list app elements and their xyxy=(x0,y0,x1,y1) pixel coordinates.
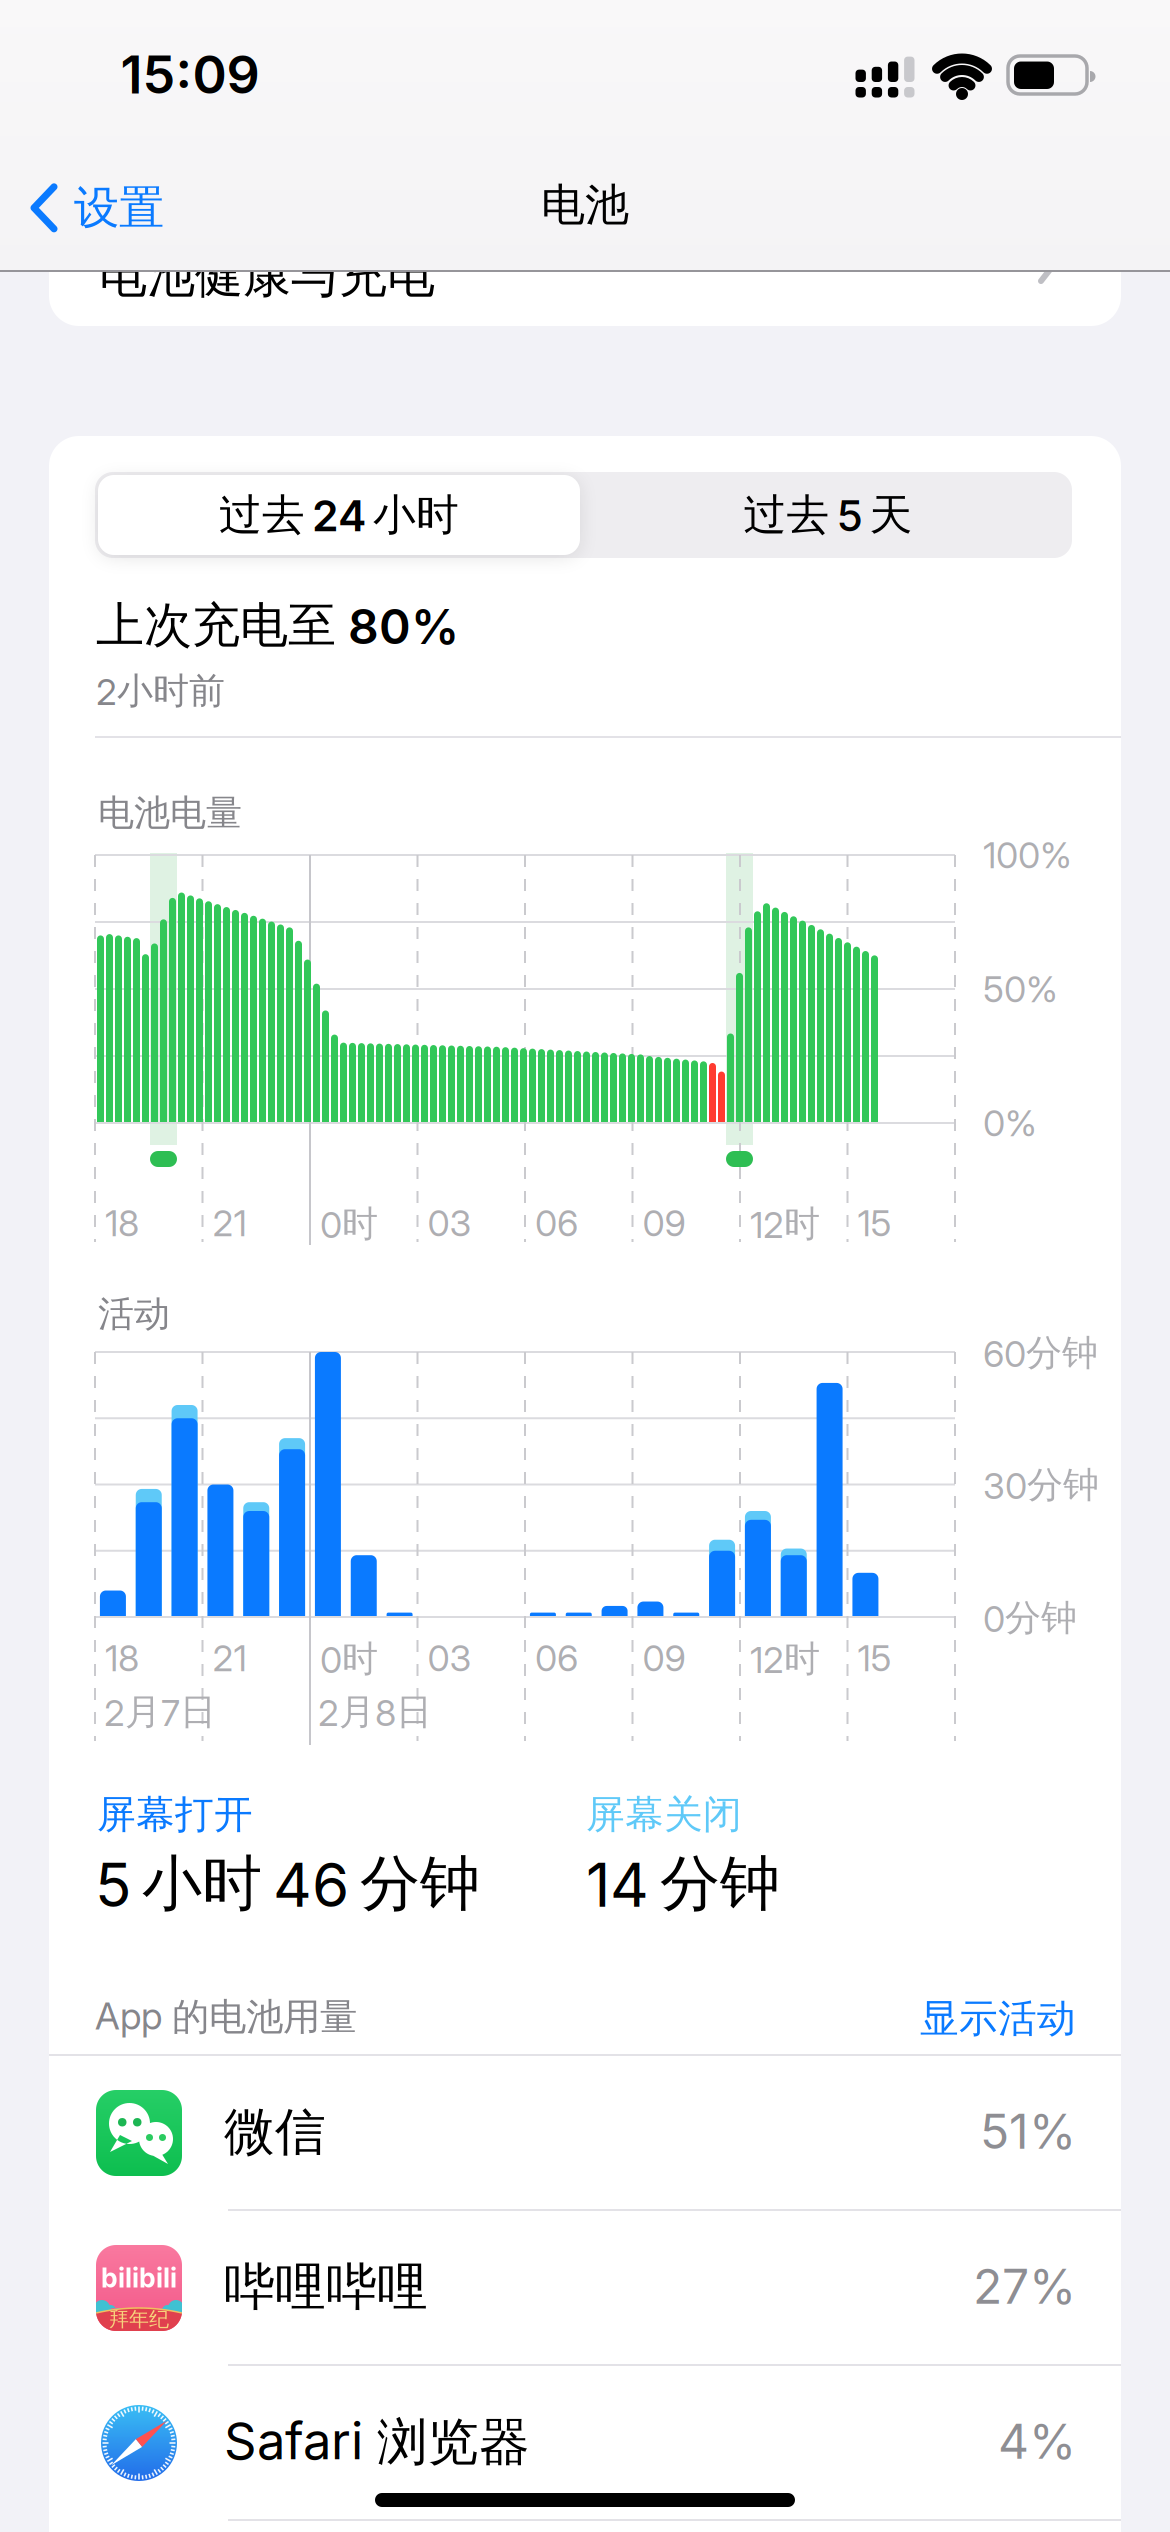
staticText: 06 xyxy=(535,1202,578,1244)
staticText: 显示活动 xyxy=(920,1995,1076,2042)
button[interactable]: 设置 xyxy=(30,180,164,236)
staticText: 拜年纪 xyxy=(109,2307,169,2332)
staticText: 09 xyxy=(642,1202,685,1244)
staticText: 14 分钟 xyxy=(586,1847,780,1921)
button[interactable]: 过去 5 天 xyxy=(588,475,1068,555)
staticText: 27% xyxy=(973,2258,1076,2315)
staticText: App 的电池用量 xyxy=(95,1994,357,2040)
staticText: 03 xyxy=(427,1202,471,1244)
staticText: 电池健康与充电 xyxy=(99,246,435,305)
staticText: bilibili xyxy=(101,2262,177,2293)
staticText: 15 xyxy=(857,1637,891,1679)
staticText: 上次充电至 80% xyxy=(96,596,459,655)
staticText: 18 xyxy=(105,1637,139,1679)
staticText: 屏幕关闭 xyxy=(586,1791,742,1838)
staticText: 设置 xyxy=(74,180,164,236)
staticText: 4% xyxy=(998,2413,1076,2470)
staticText: 2月7日 xyxy=(104,1690,216,1734)
staticText: 5 小时 46 分钟 xyxy=(95,1847,480,1921)
staticText: 03 xyxy=(427,1637,471,1679)
button[interactable]: Safari 浏览器 xyxy=(49,2366,1121,2520)
staticText: 51% xyxy=(980,2103,1076,2160)
button[interactable]: 过去 24 小时 xyxy=(98,475,580,555)
button[interactable]: 微信 xyxy=(49,2056,1121,2210)
staticText: 21 xyxy=(212,1637,246,1679)
staticText: 屏幕打开 xyxy=(97,1791,253,1838)
staticText: 21 xyxy=(212,1202,246,1244)
staticText: 哔哩哔哩 xyxy=(224,2256,428,2318)
staticText: 微信 xyxy=(224,2101,326,2163)
staticText: 09 xyxy=(642,1637,685,1679)
staticText: 过去 24 小时 xyxy=(219,489,459,541)
staticText: 50% xyxy=(983,968,1058,1010)
staticText: 12时 xyxy=(750,1202,820,1246)
staticText: Safari 浏览器 xyxy=(224,2411,530,2474)
staticText: 100% xyxy=(983,834,1072,876)
staticText: 过去 5 天 xyxy=(743,489,912,541)
staticText: 2小时前 xyxy=(96,669,225,713)
button[interactable]: 显示活动 xyxy=(920,1995,1076,2042)
staticText: 12时 xyxy=(750,1637,820,1681)
staticText: 0分钟 xyxy=(983,1596,1077,1640)
button[interactable]: bilibili xyxy=(49,2211,1121,2365)
staticText: 电池电量 xyxy=(98,791,242,835)
staticText: 18 xyxy=(105,1202,139,1244)
staticText: 0时 xyxy=(320,1202,378,1246)
staticText: 60分钟 xyxy=(983,1331,1098,1375)
staticText: 0时 xyxy=(320,1637,378,1681)
staticText: 30分钟 xyxy=(983,1463,1099,1507)
staticText: 活动 xyxy=(98,1292,170,1336)
staticText: 2月8日 xyxy=(318,1690,432,1734)
staticText: 15:09 xyxy=(120,44,259,105)
staticText: 0% xyxy=(983,1102,1037,1144)
staticText: 06 xyxy=(535,1637,578,1679)
staticText: 15 xyxy=(857,1202,891,1244)
staticText: 电池 xyxy=(541,178,629,232)
